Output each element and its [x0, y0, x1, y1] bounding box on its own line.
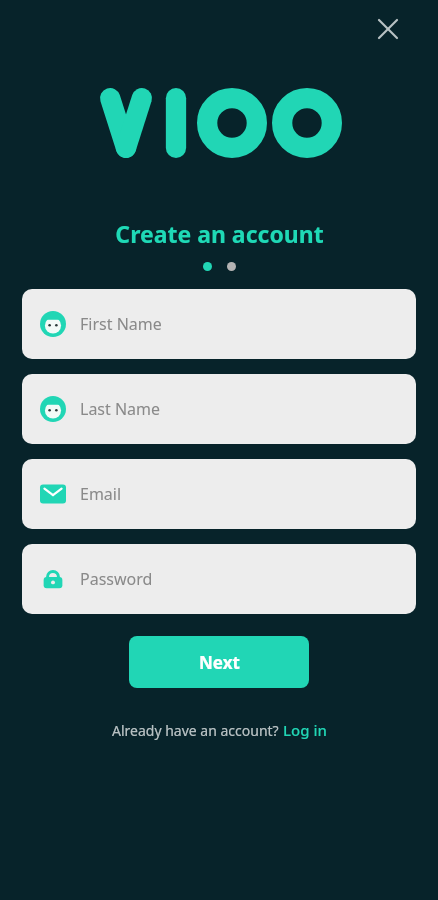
button[interactable]: First Name [22, 289, 416, 359]
staticText: Log in [283, 720, 327, 740]
staticText: Already have an account? [112, 721, 283, 740]
button[interactable]: Password [22, 544, 416, 614]
staticText: Password [80, 568, 153, 590]
button[interactable]: Close [371, 12, 405, 46]
staticText: Create an account [115, 218, 324, 249]
button[interactable]: Last Name [22, 374, 416, 444]
staticText: Next [199, 651, 240, 674]
staticText: Last Name [80, 398, 161, 420]
staticText: First Name [80, 313, 162, 335]
button[interactable]: Already have an account? [112, 720, 327, 740]
staticText: Email [80, 483, 122, 505]
button[interactable]: Next [129, 636, 309, 688]
button[interactable]: Email [22, 459, 416, 529]
